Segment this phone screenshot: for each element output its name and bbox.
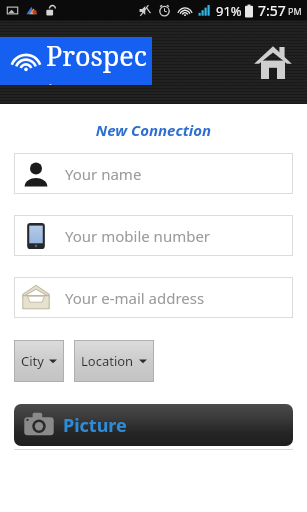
staticText: Your e-mail address — [65, 288, 205, 308]
staticText: Picture — [63, 413, 127, 438]
button[interactable]: Your e-mail address — [14, 277, 293, 318]
button[interactable]: Prospect logo — [0, 37, 152, 85]
staticText: City — [21, 352, 44, 370]
staticText: 91% — [216, 2, 242, 20]
button[interactable]: Your mobile number — [14, 215, 293, 256]
button[interactable]: Home — [249, 39, 297, 87]
staticText: New Connection — [0, 120, 307, 140]
button[interactable]: City — [14, 340, 64, 382]
staticText: PM — [288, 5, 302, 17]
staticText: Your mobile number — [65, 226, 211, 246]
staticText: Location — [81, 352, 134, 370]
button[interactable]: Your name — [14, 153, 293, 194]
staticText: 7:57 — [258, 1, 286, 20]
button[interactable]: Picture — [14, 404, 293, 446]
staticText: Prospect — [46, 37, 152, 85]
button[interactable]: Location — [74, 340, 154, 382]
staticText: Your name — [65, 164, 142, 184]
